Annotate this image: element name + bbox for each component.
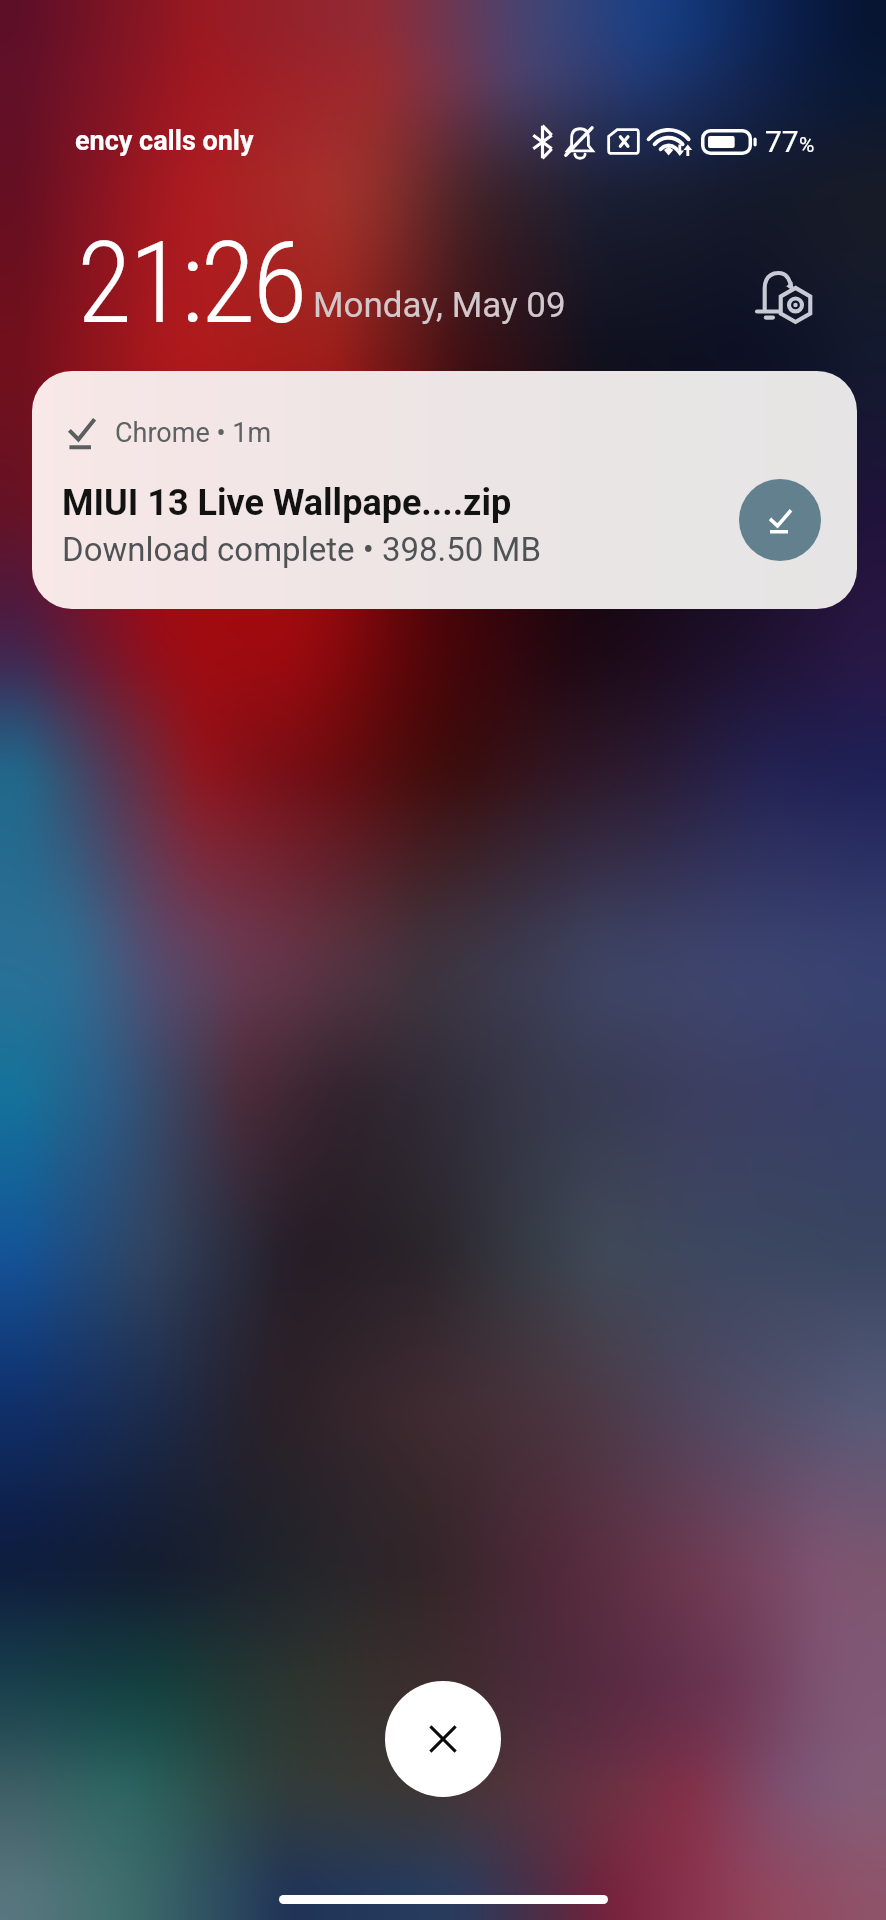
button[interactable]: Open download: [739, 479, 821, 561]
button[interactable]: Chrome • 1m: [32, 371, 857, 609]
staticText: Monday, May 09: [313, 285, 566, 326]
staticText: Download complete • 398.50 MB: [62, 530, 541, 569]
staticText: ency calls only: [75, 125, 254, 157]
button[interactable]: Close: [385, 1681, 501, 1797]
staticText: 77: [765, 124, 799, 159]
staticText: Chrome • 1m: [115, 417, 272, 449]
staticText: MIUI 13 Live Wallpape....zip: [62, 482, 512, 524]
button[interactable]: Notification settings: [748, 261, 820, 333]
staticText: 21:26: [77, 217, 305, 349]
staticText: %: [799, 133, 815, 158]
